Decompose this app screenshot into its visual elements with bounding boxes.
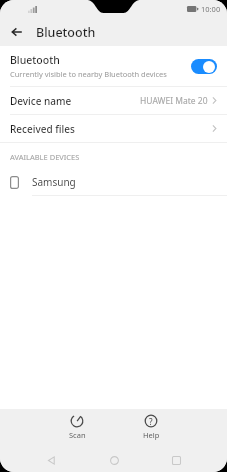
button[interactable]: Scan for devices <box>55 414 99 440</box>
button[interactable]: Back <box>39 448 63 472</box>
button[interactable]: Home <box>102 448 126 472</box>
button[interactable]: Bluetooth toggle <box>191 59 217 74</box>
button[interactable]: Device name <box>0 87 227 114</box>
staticText: Samsung <box>32 175 76 189</box>
button[interactable]: Bluetooth <box>0 46 227 86</box>
staticText: Bluetooth <box>10 53 60 67</box>
button[interactable]: Received files <box>0 115 227 142</box>
staticText: 10:00 <box>201 4 221 14</box>
button[interactable]: Samsung <box>0 169 227 195</box>
staticText: Received files <box>10 122 75 136</box>
button[interactable]: Back <box>7 22 27 42</box>
staticText: Bluetooth <box>36 24 96 41</box>
staticText: Currently visible to nearby Bluetooth de… <box>10 69 167 79</box>
staticText: AVAILABLE DEVICES <box>10 152 80 162</box>
staticText: Scan <box>69 430 86 440</box>
button[interactable]: Help <box>129 414 173 440</box>
staticText: Help <box>143 430 160 440</box>
staticText: ? <box>149 416 153 427</box>
button[interactable]: Recents <box>164 448 188 472</box>
staticText: Device name <box>10 94 72 108</box>
staticText: HUAWEI Mate 20 <box>140 95 208 107</box>
